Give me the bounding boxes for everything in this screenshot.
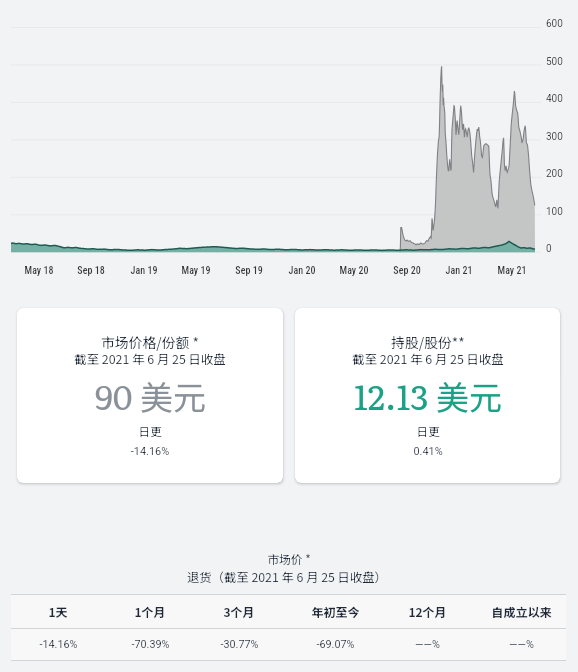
staticText: Sep 19 [219, 265, 279, 277]
staticText: May 19 [166, 265, 226, 277]
button[interactable]: 年初至今 [290, 595, 380, 628]
staticText: 300 [546, 131, 563, 143]
staticText: 美元 [140, 372, 206, 420]
staticText: Jan 20 [272, 265, 332, 277]
staticText: 0.41% [328, 445, 528, 458]
button[interactable]: 自成立以来 [476, 595, 566, 628]
staticText: 日更 [50, 423, 250, 440]
staticText: -14.16% [39, 638, 78, 651]
staticText: 90 [95, 370, 133, 420]
staticText: 400 [546, 93, 563, 105]
staticText: 0 [546, 243, 552, 255]
staticText: 市场价格/份额 * [20, 332, 280, 352]
staticText: 美元 [436, 372, 502, 420]
staticText: 截至 2021 年 6 月 25 日收盘 [298, 350, 558, 368]
button[interactable]: 3个月 [194, 595, 284, 628]
button[interactable] [17, 308, 283, 483]
staticText: -14.16% [50, 445, 250, 458]
staticText: May 18 [9, 265, 69, 277]
staticText: ——% [415, 638, 440, 651]
staticText: 1天 [48, 603, 68, 620]
button[interactable]: 12个月 [382, 595, 472, 628]
staticText: 截至 2021 年 6 月 25 日收盘 [20, 350, 280, 368]
staticText: 市场价 * [139, 550, 439, 567]
button[interactable]: 1个月 [105, 595, 195, 628]
staticText: ——% [509, 638, 534, 651]
button[interactable] [295, 308, 560, 483]
staticText: 12个月 [408, 603, 447, 620]
staticText: 日更 [328, 423, 528, 440]
staticText: May 20 [324, 265, 384, 277]
staticText: Sep 20 [377, 265, 437, 277]
staticText: -69.07% [316, 638, 355, 651]
staticText: Jan 21 [429, 265, 489, 277]
button[interactable]: 1天 [13, 595, 103, 628]
staticText: -30.77% [220, 638, 259, 651]
staticText: Jan 19 [114, 265, 174, 277]
staticText: 自成立以来 [491, 603, 552, 620]
staticText: 年初至今 [311, 603, 360, 620]
staticText: 1个月 [134, 603, 166, 620]
staticText: 持股/股份** [298, 332, 558, 352]
staticText: 200 [546, 168, 563, 180]
staticText: 3个月 [223, 603, 255, 620]
staticText: May 21 [482, 265, 542, 277]
staticText: -70.39% [131, 638, 170, 651]
staticText: 12.13 [354, 370, 429, 420]
staticText: 退货（截至 2021 年 6 月 25 日收盘） [87, 568, 487, 586]
staticText: 500 [546, 56, 563, 68]
staticText: 600 [546, 18, 563, 30]
staticText: 100 [546, 206, 563, 218]
staticText: Sep 18 [61, 265, 121, 277]
